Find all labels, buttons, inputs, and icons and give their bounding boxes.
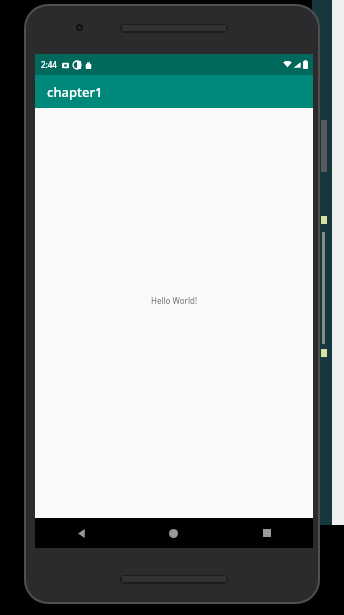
button[interactable]: Recent apps xyxy=(220,518,313,548)
button[interactable]: chapter1 xyxy=(35,75,313,108)
button[interactable]: Home xyxy=(127,518,220,548)
staticText: 2:44 xyxy=(41,59,57,70)
staticText: chapter1 xyxy=(47,83,103,101)
button[interactable]: Back xyxy=(35,518,127,548)
staticText: Hello World! xyxy=(151,295,198,306)
